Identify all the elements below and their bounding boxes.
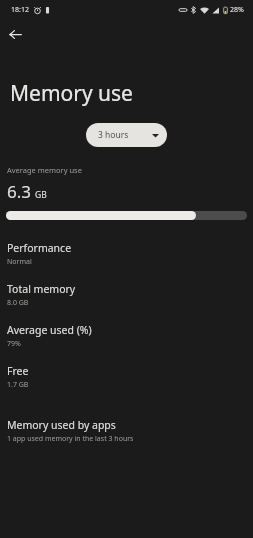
staticText: 3 hours (98, 129, 129, 141)
staticText: 1 app used memory in the last 3 hours (7, 434, 134, 444)
staticText: 6.3 (7, 180, 32, 203)
staticText: Average used (%) (7, 323, 92, 337)
staticText: Performance (7, 241, 72, 255)
button[interactable]: Memory used by apps (0, 411, 253, 452)
staticText: 28% (230, 5, 244, 15)
button[interactable]: Performance (0, 234, 253, 275)
button[interactable]: 3 hours (86, 123, 167, 147)
staticText: Free (7, 364, 29, 378)
staticText: Normal (7, 257, 32, 267)
staticText: Total memory (7, 282, 76, 296)
staticText: Memory used by apps (7, 418, 116, 432)
button[interactable]: Average used (%) (0, 316, 253, 357)
button[interactable]: Back (3, 22, 27, 46)
staticText: 18:12 (11, 5, 29, 15)
staticText: 1.7 GB (7, 380, 29, 390)
staticText: GB (35, 189, 47, 201)
button[interactable]: Total memory (0, 275, 253, 316)
button[interactable]: Free (0, 357, 253, 398)
staticText: 79% (7, 339, 21, 349)
staticText: Memory use (10, 79, 133, 108)
staticText: Average memory use (7, 165, 82, 175)
staticText: 8.0 GB (7, 298, 29, 308)
